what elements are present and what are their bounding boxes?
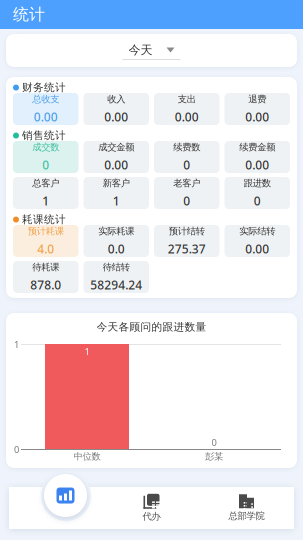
button[interactable]: 成交金额 — [83, 141, 149, 173]
staticText: 4.0 — [37, 241, 54, 257]
staticText: 预计耗课 — [28, 225, 64, 237]
staticText: 1 — [14, 338, 19, 351]
staticText: 275.37 — [168, 241, 206, 257]
staticText: 58294.24 — [90, 277, 142, 293]
staticText: 今天各顾问的跟进数量 — [96, 320, 206, 333]
button[interactable]: 总部学院 — [199, 487, 294, 529]
button[interactable]: 实际结转 — [224, 225, 290, 257]
button[interactable]: 实际耗课 — [83, 225, 149, 257]
staticText: 成交金额 — [98, 141, 134, 153]
button[interactable]: 今天 — [122, 41, 180, 60]
staticText: 1 — [42, 193, 49, 209]
button[interactable]: 代办 — [104, 487, 199, 529]
button[interactable]: 续费金额 — [224, 141, 290, 173]
button[interactable]: 新客户 — [83, 177, 149, 209]
staticText: 1 — [84, 345, 89, 358]
staticText: 总客户 — [32, 177, 59, 189]
staticText: 中位数 — [73, 451, 100, 462]
button[interactable]: 老客户 — [154, 177, 219, 209]
staticText: 续费数 — [173, 141, 200, 153]
staticText: 0.00 — [245, 109, 269, 125]
staticText: 成交数 — [32, 141, 59, 153]
staticText: 0 — [183, 157, 190, 173]
staticText: 1 — [113, 193, 120, 209]
staticText: 878.0 — [30, 277, 61, 293]
staticText: 财务统计 — [22, 81, 66, 94]
staticText: 代办 — [142, 511, 160, 522]
staticText: 0 — [211, 436, 216, 449]
staticText: 实际耗课 — [98, 225, 134, 237]
staticText: 彭某 — [205, 451, 223, 462]
staticText: 耗课统计 — [22, 213, 66, 226]
staticText: 预计结转 — [169, 225, 205, 237]
button[interactable]: 待耗课 — [13, 261, 78, 293]
button[interactable]: 退费 — [224, 93, 290, 125]
staticText: 0 — [14, 443, 19, 456]
button[interactable]: 收入 — [83, 93, 149, 125]
staticText: 0.00 — [34, 109, 58, 125]
staticText: 老客户 — [173, 177, 200, 189]
staticText: 0 — [183, 193, 190, 209]
staticText: 待结转 — [103, 261, 130, 273]
staticText: 总部学院 — [228, 510, 264, 522]
staticText: 0.00 — [245, 241, 269, 257]
staticText: 新客户 — [103, 177, 130, 189]
staticText: 实际结转 — [239, 225, 275, 237]
staticText: 0.00 — [245, 157, 269, 173]
staticText: 收入 — [107, 93, 125, 105]
staticText: 0.00 — [104, 157, 128, 173]
staticText: 退费 — [248, 93, 266, 105]
staticText: 销售统计 — [22, 129, 66, 142]
staticText: 0.0 — [108, 241, 125, 257]
button[interactable]: 预计结转 — [154, 225, 219, 257]
staticText: 待耗课 — [32, 261, 59, 273]
button[interactable]: 总收支 — [13, 93, 78, 125]
staticText: 支出 — [178, 93, 196, 105]
staticText: 总收支 — [32, 93, 59, 105]
staticText: 跟进数 — [244, 177, 271, 189]
button[interactable]: 待结转 — [83, 261, 149, 293]
button[interactable]: 统计 — [44, 474, 87, 517]
staticText: 0.00 — [104, 109, 128, 125]
button[interactable]: 成交数 — [13, 141, 78, 173]
button[interactable]: 统计 — [9, 487, 104, 529]
button[interactable]: 跟进数 — [224, 177, 290, 209]
button[interactable]: 支出 — [154, 93, 219, 125]
staticText: 今天 — [128, 43, 152, 57]
staticText: 0 — [254, 193, 261, 209]
button[interactable]: 预计耗课 — [13, 225, 78, 257]
staticText: 0.00 — [175, 109, 199, 125]
button[interactable]: 总客户 — [13, 177, 78, 209]
staticText: 续费金额 — [239, 141, 275, 153]
button[interactable]: 续费数 — [154, 141, 219, 173]
staticText: 统计 — [13, 5, 45, 24]
staticText: 0 — [42, 157, 49, 173]
